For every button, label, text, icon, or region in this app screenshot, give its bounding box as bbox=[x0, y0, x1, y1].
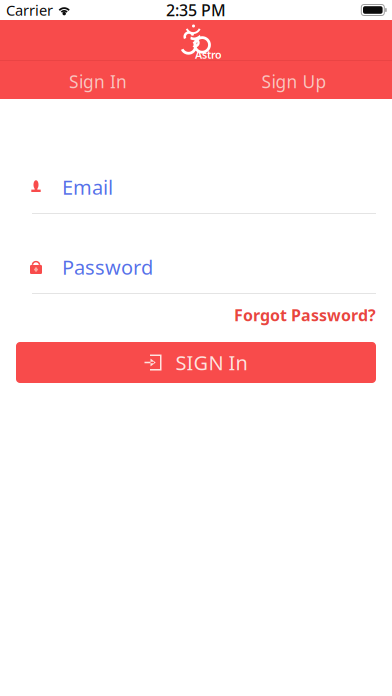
staticText: Forgot Password? bbox=[234, 304, 376, 326]
staticText: Carrier bbox=[6, 0, 53, 20]
staticText: 2:35 PM bbox=[166, 0, 226, 21]
staticText: SIGN In bbox=[175, 349, 247, 376]
staticText: Sign In bbox=[69, 70, 127, 93]
staticText: Sign Up bbox=[261, 70, 326, 93]
button[interactable]: Sign Up bbox=[196, 60, 392, 99]
staticText: Password bbox=[62, 254, 153, 280]
button[interactable]: SIGN In bbox=[16, 342, 376, 383]
button[interactable]: Sign In bbox=[0, 60, 196, 99]
button[interactable]: Forgot Password? bbox=[0, 303, 392, 327]
staticText: Astro bbox=[195, 47, 222, 62]
staticText: Email bbox=[62, 174, 113, 200]
